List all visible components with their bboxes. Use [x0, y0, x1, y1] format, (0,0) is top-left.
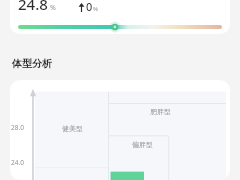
other: Increase [78, 3, 85, 12]
staticText: 健美型 [62, 124, 83, 133]
staticText: 体型分析 [12, 57, 52, 70]
staticText: 肥胖型 [150, 107, 171, 116]
staticText: 偏胖型 [132, 140, 153, 149]
button[interactable]: 24.8 [10, 0, 230, 34]
button[interactable] [18, 21, 222, 33]
staticText: 24.0 [11, 158, 24, 167]
staticText: % [93, 5, 98, 13]
staticText: % [50, 3, 56, 13]
staticText: 28.0 [11, 123, 24, 132]
staticText: 24.8 [18, 0, 48, 14]
staticText: 0 [86, 0, 93, 14]
button[interactable]: 28.0 [10, 80, 230, 180]
